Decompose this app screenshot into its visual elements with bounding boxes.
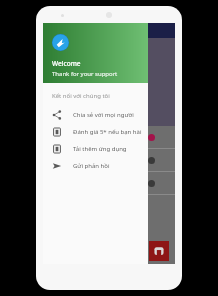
staticText: Kết nối với chúng tôi xyxy=(52,92,110,100)
staticText: Welcome xyxy=(52,59,81,68)
staticText: Chia sẻ với mọi người xyxy=(73,111,134,119)
staticText: Thank for your support xyxy=(52,70,118,78)
button[interactable]: Đánh giá 5* nếu bạn hài lòng xyxy=(43,123,148,140)
button[interactable]: Gửi phản hồi xyxy=(43,157,148,174)
staticText: Đánh giá 5* nếu bạn hài lòng xyxy=(73,128,148,136)
button[interactable] xyxy=(43,172,175,195)
staticText: Tải thêm ứng dụng xyxy=(73,145,127,153)
button[interactable]: Chia sẻ với mọi người xyxy=(43,106,148,123)
staticText: Gửi phản hồi xyxy=(73,162,110,170)
button[interactable] xyxy=(43,126,175,149)
button[interactable] xyxy=(43,149,175,172)
button[interactable]: Tải thêm ứng dụng xyxy=(43,140,148,157)
button[interactable]: Profile xyxy=(52,34,69,51)
